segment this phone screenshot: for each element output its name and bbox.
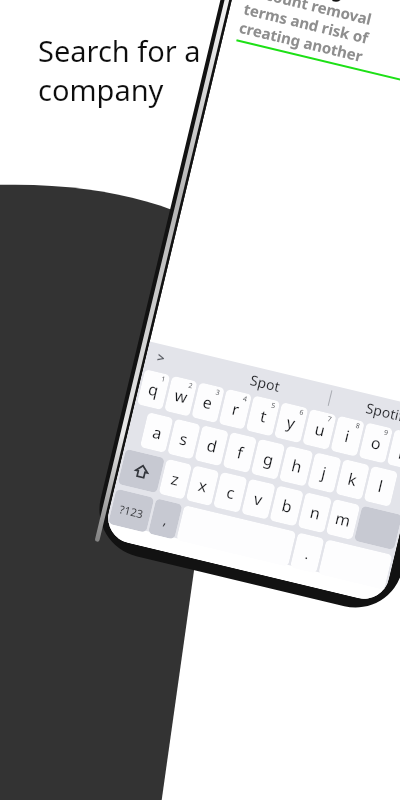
staticText: k bbox=[346, 468, 360, 491]
staticText: Search for a company bbox=[38, 31, 201, 109]
staticText: c bbox=[224, 481, 237, 504]
staticText: . bbox=[303, 544, 312, 563]
staticText: 4 bbox=[242, 394, 249, 405]
button[interactable]: w bbox=[164, 376, 198, 417]
staticText: o bbox=[369, 431, 384, 455]
button[interactable]: e bbox=[191, 382, 225, 423]
staticText: 6 bbox=[298, 407, 305, 418]
button[interactable]: v bbox=[241, 478, 276, 520]
staticText: s bbox=[177, 427, 190, 451]
staticText: e bbox=[201, 391, 215, 414]
staticText: d bbox=[205, 434, 220, 458]
button[interactable]: p bbox=[387, 429, 400, 470]
staticText: r bbox=[230, 398, 242, 421]
button[interactable]: h bbox=[279, 445, 314, 487]
staticText: y bbox=[284, 411, 298, 434]
button[interactable]: Enter bbox=[318, 539, 393, 590]
staticText: Spotify bbox=[364, 398, 400, 427]
staticText: v bbox=[251, 487, 265, 511]
staticText: 3 bbox=[215, 387, 222, 398]
button[interactable]: i bbox=[330, 415, 365, 457]
staticText: j bbox=[319, 461, 329, 484]
staticText: 7 bbox=[326, 414, 334, 425]
button[interactable]: y bbox=[274, 402, 309, 443]
staticText: ?123 bbox=[118, 501, 145, 521]
staticText: f bbox=[235, 441, 246, 464]
button[interactable]: c bbox=[213, 472, 248, 513]
button[interactable]: ?123 bbox=[108, 489, 154, 533]
button[interactable]: d bbox=[194, 425, 229, 466]
button[interactable]: l bbox=[363, 466, 398, 507]
staticText: b bbox=[280, 494, 295, 518]
staticText: z bbox=[169, 467, 182, 491]
staticText: t bbox=[258, 405, 269, 427]
button[interactable]: , bbox=[148, 498, 183, 540]
button[interactable]: n bbox=[297, 492, 332, 533]
staticText: x bbox=[196, 474, 210, 498]
button[interactable]: b bbox=[269, 485, 304, 526]
staticText: , bbox=[161, 510, 170, 529]
button[interactable]: q bbox=[137, 369, 170, 410]
button[interactable]: m bbox=[326, 499, 360, 540]
button[interactable]: t bbox=[246, 395, 280, 436]
staticText: Account removal terms and risk of creati… bbox=[237, 0, 375, 66]
staticText: 9 bbox=[383, 428, 390, 439]
button[interactable]: k bbox=[335, 459, 370, 500]
staticText: m bbox=[333, 507, 353, 532]
button[interactable]: r bbox=[218, 389, 252, 430]
staticText: p bbox=[397, 438, 400, 462]
staticText: Spot bbox=[248, 370, 282, 396]
staticText: a bbox=[150, 421, 164, 444]
button[interactable]: Space bbox=[176, 505, 296, 567]
button[interactable]: x bbox=[186, 465, 219, 506]
staticText: w bbox=[172, 384, 190, 408]
staticText: g bbox=[261, 447, 276, 471]
staticText: i bbox=[343, 425, 353, 447]
button[interactable]: g bbox=[251, 439, 285, 480]
button[interactable]: o bbox=[358, 422, 393, 464]
staticText: > bbox=[155, 348, 167, 367]
staticText: 2 bbox=[187, 381, 194, 392]
button[interactable]: Backspace bbox=[354, 506, 400, 550]
staticText: l bbox=[376, 475, 386, 498]
staticText: 5 bbox=[270, 401, 277, 411]
button[interactable]: s bbox=[167, 418, 201, 460]
staticText: 1 bbox=[160, 374, 167, 385]
button[interactable]: a bbox=[140, 412, 173, 453]
button[interactable]: Phone showing Spotify search result bbox=[90, 0, 400, 617]
button[interactable]: j bbox=[307, 452, 342, 493]
staticText: u bbox=[312, 418, 327, 441]
button[interactable]: . bbox=[290, 532, 325, 574]
button[interactable]: u bbox=[302, 409, 337, 450]
staticText: n bbox=[308, 501, 323, 525]
staticText: 8 bbox=[355, 421, 362, 432]
button[interactable]: z bbox=[158, 459, 192, 500]
button[interactable] bbox=[118, 449, 165, 493]
staticText: Spotify bbox=[250, 0, 355, 6]
button[interactable]: f bbox=[222, 432, 257, 473]
staticText: h bbox=[289, 454, 304, 478]
staticText: q bbox=[146, 378, 161, 401]
